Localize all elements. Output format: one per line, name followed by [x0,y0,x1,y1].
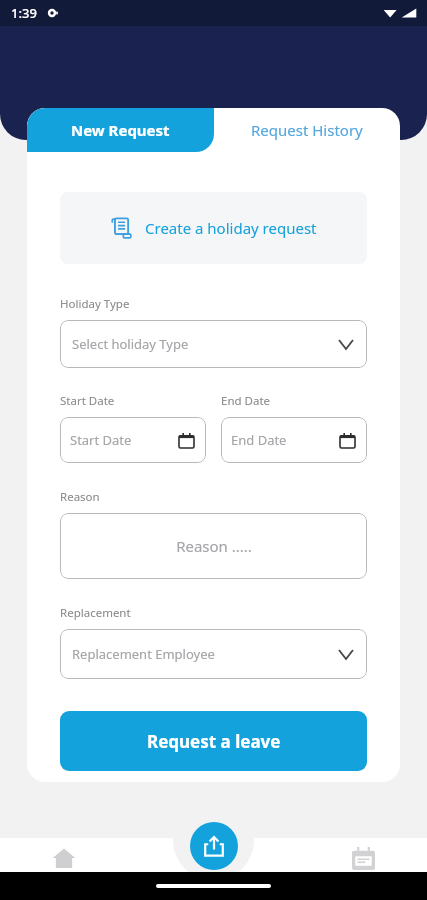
button[interactable]: Replacement Employee [60,629,367,679]
button[interactable]: Reason ..... [60,513,367,579]
button[interactable]: Create a holiday request [60,192,367,264]
staticText: Holiday Type [60,296,130,312]
staticText: 1:39 [11,4,37,22]
staticText: Start Date [60,393,115,409]
staticText: Start Date [70,431,132,449]
button[interactable]: Home [42,836,86,880]
button[interactable]: Calendar [341,836,385,880]
staticText: Create a holiday request [145,218,317,238]
button[interactable]: Select holiday Type [60,320,367,368]
staticText: Replacement [60,605,131,621]
staticText: Replacement Employee [72,645,215,663]
staticText: End Date [231,431,287,449]
button[interactable]: Request a leave [60,711,367,771]
button[interactable]: Requests [190,822,238,870]
staticText: Select holiday Type [72,335,189,353]
staticText: Request History [251,120,363,140]
button[interactable]: End Date [221,417,367,463]
staticText: New Request [71,120,170,140]
staticText: Reason [60,489,100,505]
staticText: Request a leave [147,730,281,753]
button[interactable]: New Request [27,108,214,152]
staticText: Requests [188,870,240,886]
staticText: End Date [221,393,271,409]
staticText: Reason ..... [176,536,252,556]
button[interactable]: Request History [214,108,400,152]
button[interactable]: Start Date [60,417,206,463]
